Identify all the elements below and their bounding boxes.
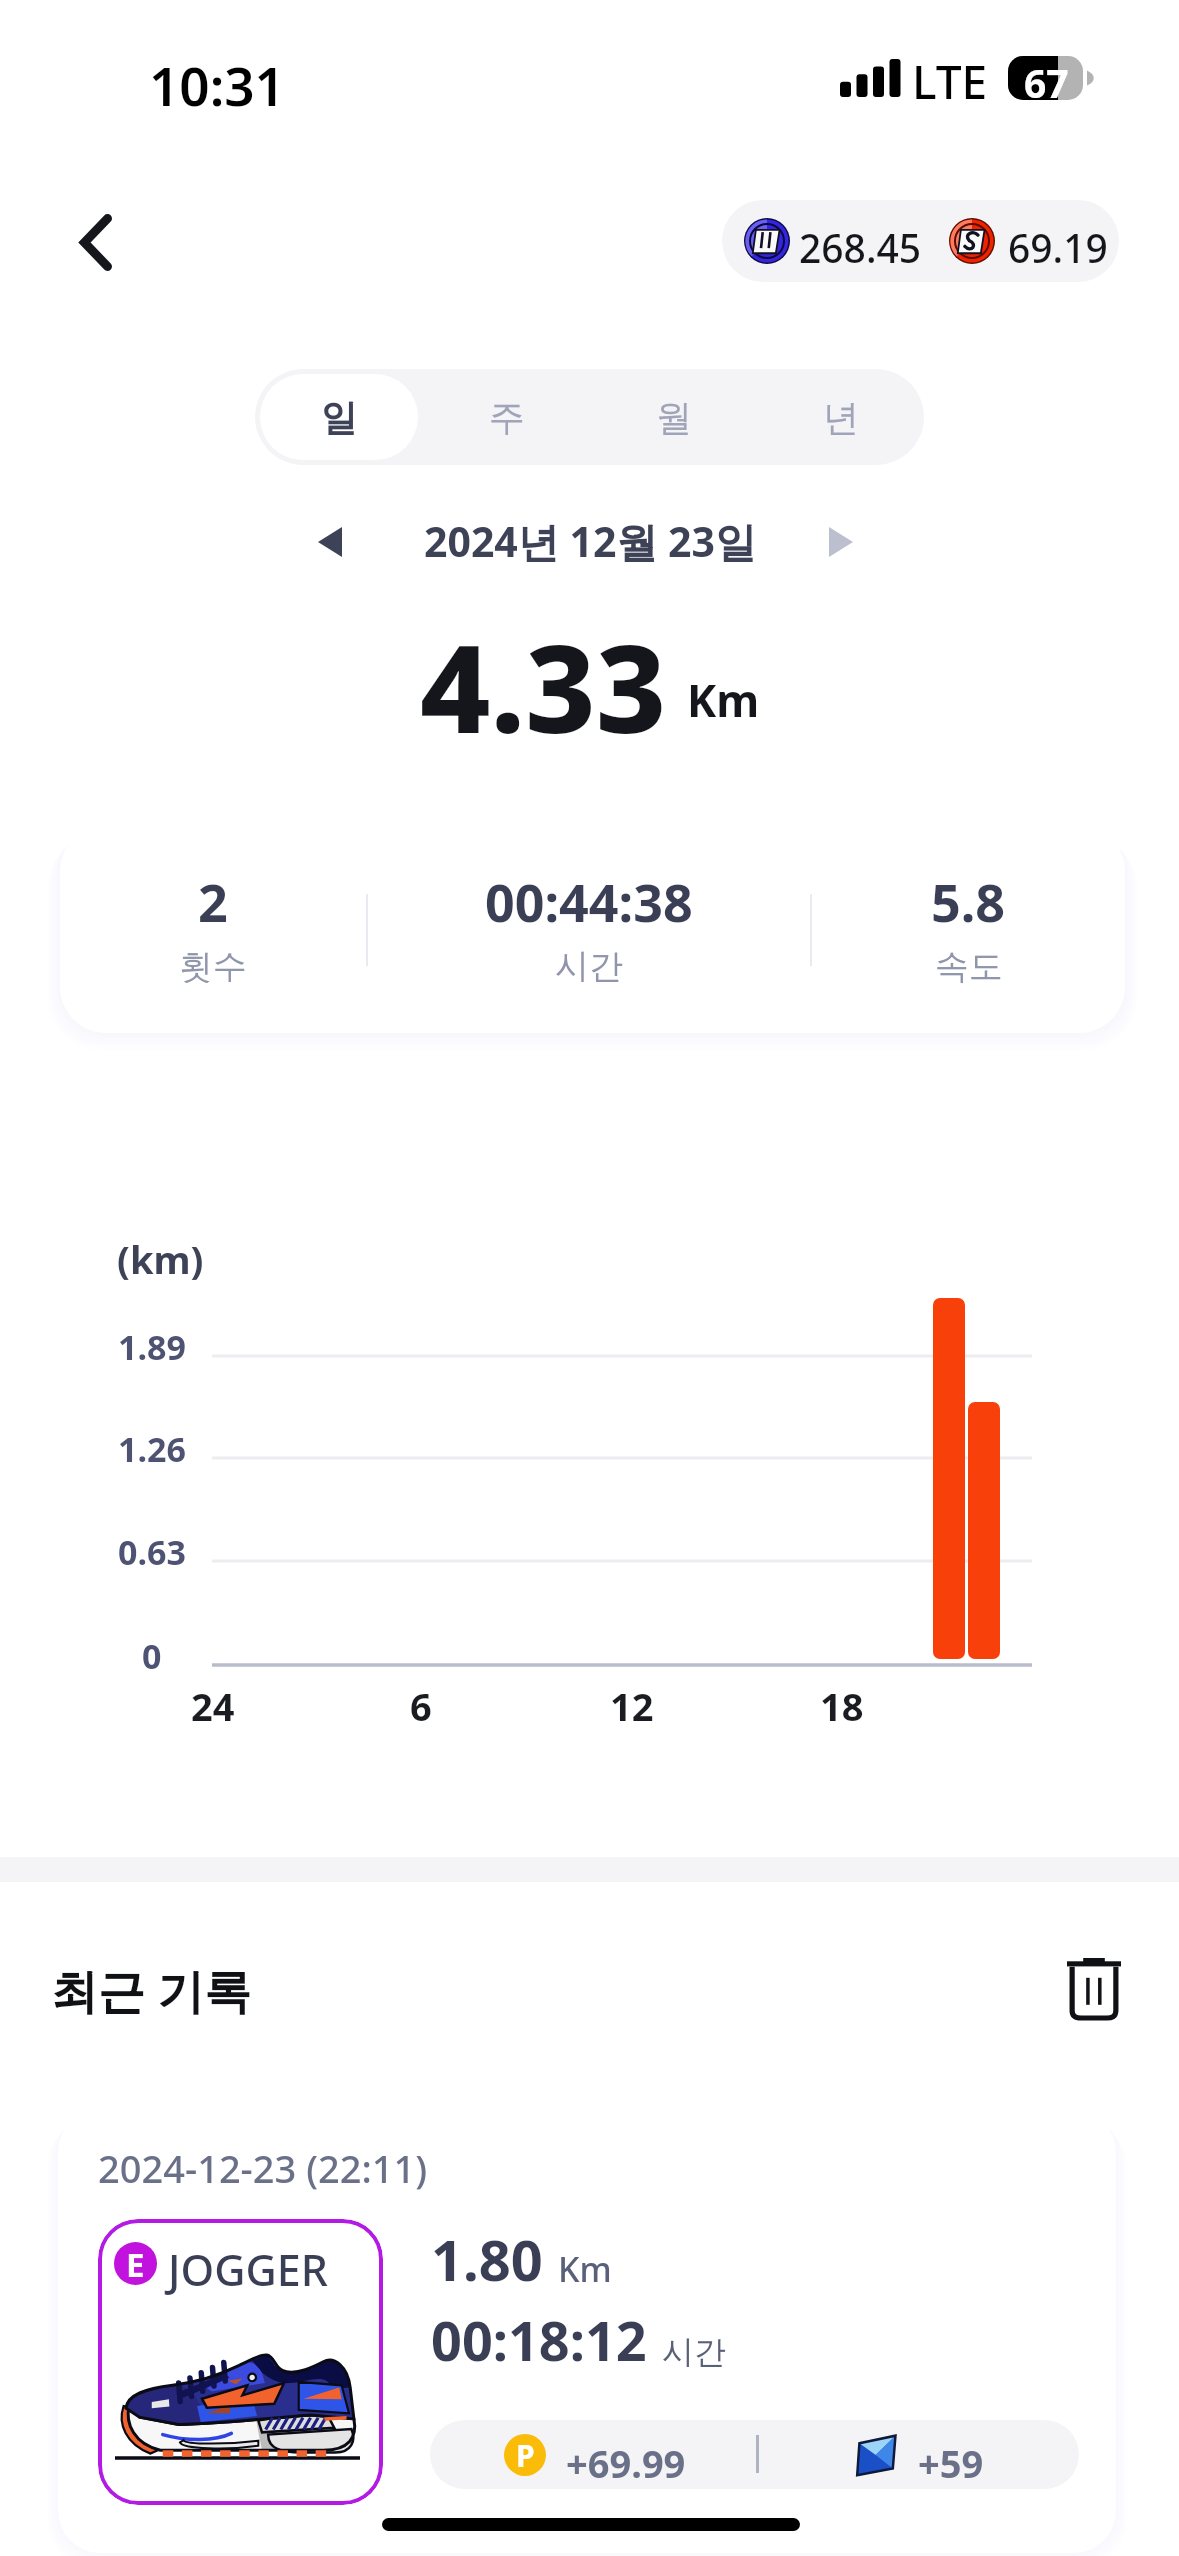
staticText: 69.19 xyxy=(1008,221,1108,274)
staticText: 0 xyxy=(142,1633,162,1679)
staticText: 00:44:38 xyxy=(485,866,693,937)
staticText: 24 xyxy=(191,1680,235,1730)
staticText: E xyxy=(126,2242,145,2285)
button[interactable]: Next day xyxy=(801,502,881,582)
staticText: 속도 xyxy=(935,945,1003,988)
button[interactable]: 268.45 xyxy=(722,200,1119,282)
staticText: 시간 xyxy=(555,945,623,988)
staticText: 1.26 xyxy=(118,1426,186,1472)
staticText: 67 xyxy=(1024,56,1069,100)
button[interactable]: Back xyxy=(54,200,138,284)
staticText: P xyxy=(516,2435,535,2476)
button[interactable]: 2024-12-23 (22:11) xyxy=(58,2110,1116,2553)
staticText: 최근 기록 xyxy=(51,1958,252,2022)
button[interactable]: Previous day xyxy=(290,502,370,582)
staticText: Km xyxy=(687,670,760,730)
staticText: LTE xyxy=(912,50,988,106)
staticText: 5.8 xyxy=(931,866,1006,937)
button[interactable]: Delete records xyxy=(1052,1946,1136,2030)
button[interactable]: 년 xyxy=(762,374,919,460)
staticText: 시간 xyxy=(662,2332,726,2372)
staticText: 주 xyxy=(489,395,525,440)
staticText: 1.89 xyxy=(118,1324,186,1370)
staticText: 6 xyxy=(410,1680,432,1730)
staticText: 00:18:12 xyxy=(431,2303,647,2377)
staticText: 일 xyxy=(321,395,357,440)
staticText: 2 xyxy=(198,866,228,937)
staticText: 268.45 xyxy=(799,221,922,274)
staticText: 2024년 12월 23일 xyxy=(424,513,756,569)
button[interactable]: P xyxy=(430,2420,1079,2489)
button[interactable]: 주 xyxy=(428,374,585,460)
staticText: 0.63 xyxy=(118,1529,186,1575)
staticText: +69.99 xyxy=(566,2437,686,2489)
staticText: 1.80 xyxy=(431,2221,543,2297)
button[interactable]: 월 xyxy=(595,374,752,460)
staticText: 10:31 xyxy=(149,49,285,121)
staticText: 횟수 xyxy=(179,945,247,988)
staticText: 4.33 xyxy=(420,603,667,769)
staticText: 월 xyxy=(656,395,692,440)
staticText: 년 xyxy=(823,395,859,440)
button[interactable]: 일 xyxy=(260,374,418,460)
staticText: JOGGER xyxy=(168,2240,328,2299)
staticText: +59 xyxy=(918,2437,984,2489)
staticText: (km) xyxy=(117,1233,204,1285)
staticText: 18 xyxy=(820,1680,864,1730)
staticText: 2024-12-23 (22:11) xyxy=(98,2142,428,2194)
staticText: Km xyxy=(558,2246,612,2292)
staticText: 12 xyxy=(610,1680,654,1730)
